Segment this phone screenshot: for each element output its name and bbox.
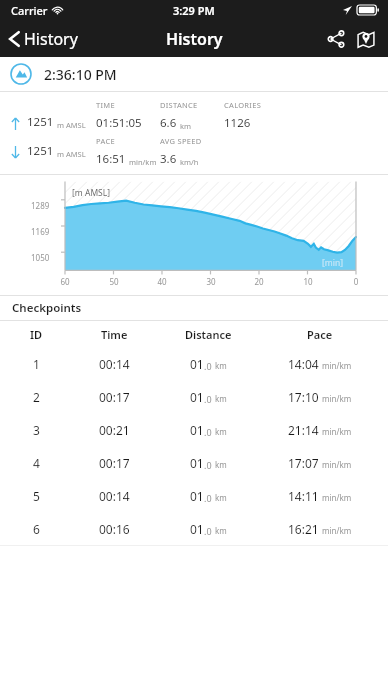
button[interactable]: 2	[0, 380, 388, 413]
staticText: 01	[190, 521, 204, 537]
staticText: 1289	[31, 200, 50, 211]
staticText: Checkpoints	[12, 300, 82, 316]
staticText: min/km	[129, 157, 157, 167]
staticText: 6	[33, 521, 40, 537]
staticText: 21:14	[288, 422, 319, 438]
staticText: 0	[346, 276, 366, 287]
staticText: km	[215, 525, 227, 536]
staticText: 5	[33, 488, 40, 504]
staticText: km	[180, 121, 192, 131]
staticText: 3.6	[160, 151, 177, 167]
staticText: 14:11	[288, 488, 319, 504]
staticText: 16:21	[288, 521, 319, 537]
staticText: km	[215, 459, 227, 470]
staticText: min/km	[322, 492, 352, 503]
staticText: Pace	[307, 327, 333, 342]
button[interactable]: Share	[322, 25, 350, 53]
staticText: min/km	[322, 393, 352, 404]
staticText: min/km	[322, 426, 352, 437]
staticText: km	[215, 426, 227, 437]
staticText: .0	[204, 492, 212, 504]
staticText: 00:14	[99, 356, 130, 372]
button[interactable]: 2:36:10 PM	[0, 57, 388, 91]
staticText: 40	[152, 276, 172, 287]
staticText: 01	[190, 488, 204, 504]
staticText: ID	[30, 327, 43, 342]
staticText: 00:17	[99, 389, 130, 405]
staticText: 1050	[31, 252, 50, 263]
staticText: .0	[204, 525, 212, 537]
staticText: 2	[33, 389, 40, 405]
staticText: Time	[101, 327, 128, 342]
button[interactable]: Map	[352, 25, 380, 53]
staticText: 00:21	[99, 422, 130, 438]
staticText: km	[215, 360, 227, 371]
staticText: [m AMSL]	[72, 187, 111, 199]
staticText: 01	[190, 422, 204, 438]
staticText: 1	[33, 356, 40, 372]
button[interactable]: 5	[0, 479, 388, 512]
staticText: 01	[190, 356, 204, 372]
staticText: 30	[201, 276, 221, 287]
staticText: m AMSL	[57, 120, 86, 130]
staticText: km	[215, 492, 227, 503]
staticText: 3	[33, 422, 40, 438]
staticText: 00:14	[99, 488, 130, 504]
button[interactable]: 6	[0, 512, 388, 545]
staticText: .0	[204, 459, 212, 471]
button[interactable]: 1	[0, 347, 388, 380]
staticText: 01:51:05	[96, 115, 142, 131]
staticText: 16:51	[96, 151, 126, 167]
button[interactable]: History	[0, 24, 88, 54]
staticText: 1169	[31, 226, 50, 237]
staticText: 3:29 PM	[173, 3, 215, 18]
staticText: .0	[204, 393, 212, 405]
staticText: 6.6	[160, 115, 177, 131]
staticText: 20	[249, 276, 269, 287]
staticText: CALORIES	[224, 100, 262, 110]
staticText: 10	[298, 276, 318, 287]
staticText: m AMSL	[57, 149, 86, 159]
staticText: 1251	[27, 143, 54, 159]
button[interactable]: 3	[0, 413, 388, 446]
staticText: 4	[33, 455, 40, 471]
staticText: Carrier	[11, 3, 48, 18]
staticText: 1251	[27, 114, 54, 130]
staticText: TIME	[96, 100, 115, 110]
staticText: DISTANCE	[160, 100, 198, 110]
staticText: min/km	[322, 459, 352, 470]
button[interactable]: 4	[0, 446, 388, 479]
staticText: 01	[190, 455, 204, 471]
staticText: 00:16	[99, 521, 130, 537]
staticText: 1126	[224, 115, 251, 131]
staticText: AVG SPEED	[160, 136, 202, 146]
staticText: .0	[204, 426, 212, 438]
staticText: 17:07	[288, 455, 319, 471]
staticText: 14:04	[288, 356, 319, 372]
staticText: .0	[204, 360, 212, 372]
staticText: History	[24, 28, 78, 50]
staticText: 2:36:10 PM	[44, 65, 117, 84]
staticText: km	[215, 393, 227, 404]
staticText: Distance	[185, 327, 232, 342]
staticText: 01	[190, 389, 204, 405]
staticText: [min]	[322, 257, 343, 269]
staticText: History	[166, 28, 223, 50]
staticText: 60	[55, 276, 75, 287]
staticText: 17:10	[288, 389, 319, 405]
staticText: 00:17	[99, 455, 130, 471]
staticText: km/h	[180, 157, 199, 167]
staticText: min/km	[322, 525, 352, 536]
staticText: PACE	[96, 136, 115, 146]
staticText: 50	[104, 276, 124, 287]
staticText: min/km	[322, 360, 352, 371]
